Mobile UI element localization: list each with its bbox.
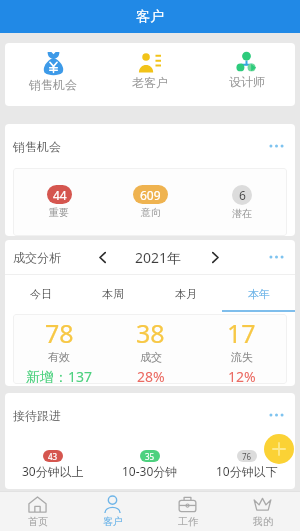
button[interactable]: Previous year <box>93 248 111 266</box>
button[interactable]: 工作 <box>150 491 225 531</box>
button[interactable]: Add new <box>264 434 294 464</box>
staticText: 38 <box>136 316 165 350</box>
button[interactable]: 43 <box>5 437 101 489</box>
staticText: 成交分析 <box>13 250 61 265</box>
staticText: 客户 <box>136 8 164 26</box>
button[interactable]: 销售机会 <box>5 43 101 106</box>
staticText: 76 <box>242 451 252 462</box>
button[interactable]: 本月 <box>149 275 222 312</box>
button[interactable]: 6 <box>196 168 287 236</box>
staticText: 2021年 <box>135 248 182 267</box>
button[interactable]: More options <box>265 135 287 157</box>
staticText: 我的 <box>253 515 273 528</box>
staticText: 12% <box>228 367 256 384</box>
button[interactable]: 我的 <box>225 491 300 531</box>
staticText: 潜在 <box>232 207 252 220</box>
button[interactable]: 38 <box>105 314 196 384</box>
staticText: 新增：137 <box>26 367 93 384</box>
button[interactable]: 609 <box>105 168 196 236</box>
button[interactable]: 本周 <box>77 275 149 312</box>
staticText: 10分钟以下 <box>216 463 278 479</box>
button[interactable]: Next year <box>206 248 224 266</box>
staticText: 销售机会 <box>13 139 61 154</box>
staticText: 工作 <box>178 515 198 528</box>
staticText: 本月 <box>175 287 197 301</box>
staticText: 接待跟进 <box>13 408 61 423</box>
staticText: 老客户 <box>132 75 168 90</box>
staticText: 流失 <box>231 350 253 364</box>
staticText: 本年 <box>248 287 270 301</box>
button[interactable]: 17 <box>196 314 287 384</box>
staticText: 销售机会 <box>29 77 77 92</box>
staticText: 客户 <box>103 515 123 528</box>
staticText: 30分钟以上 <box>22 463 84 479</box>
staticText: 意向 <box>141 206 161 219</box>
staticText: 设计师 <box>229 74 265 89</box>
staticText: 今日 <box>30 287 52 301</box>
button[interactable]: 设计师 <box>198 43 295 106</box>
button[interactable]: More options <box>265 246 287 268</box>
staticText: 28% <box>137 367 165 384</box>
staticText: 有效 <box>48 350 70 364</box>
staticText: 6 <box>239 187 246 203</box>
staticText: 78 <box>45 316 74 350</box>
button[interactable]: 今日 <box>5 275 77 312</box>
button[interactable]: 老客户 <box>101 43 198 106</box>
staticText: 本周 <box>102 287 124 301</box>
staticText: 35 <box>145 451 155 462</box>
button[interactable]: 本年 <box>222 275 295 312</box>
staticText: 17 <box>227 316 256 350</box>
staticText: 重要 <box>49 206 69 219</box>
staticText: 10-30分钟 <box>122 463 178 479</box>
staticText: 43 <box>48 451 58 462</box>
button[interactable]: 35 <box>101 437 198 489</box>
button[interactable]: 44 <box>13 168 105 236</box>
button[interactable]: 客户 <box>75 491 150 531</box>
button[interactable]: More options <box>265 404 287 426</box>
staticText: 首页 <box>28 515 48 528</box>
staticText: 609 <box>140 187 161 203</box>
staticText: 44 <box>53 187 67 203</box>
button[interactable]: 首页 <box>0 491 75 531</box>
button[interactable]: 78 <box>13 314 105 384</box>
staticText: 成交 <box>140 350 162 364</box>
button[interactable]: 76 <box>198 437 295 489</box>
